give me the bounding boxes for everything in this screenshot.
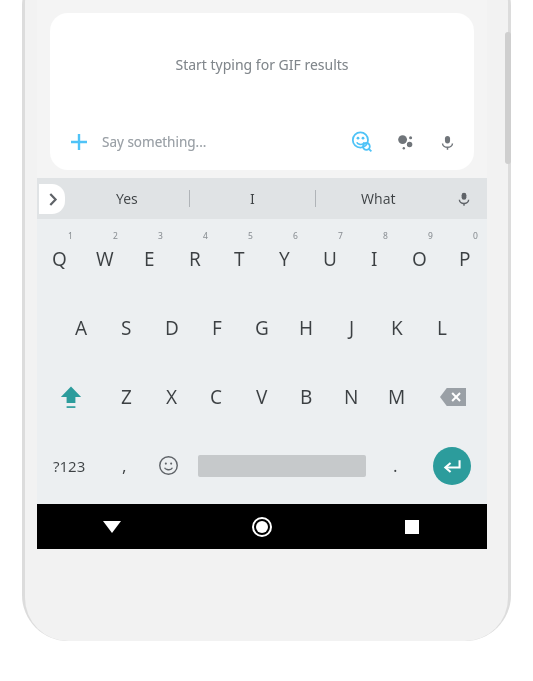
button[interactable]: X (149, 362, 194, 431)
button[interactable]: P (442, 225, 487, 293)
staticText: B (300, 384, 313, 410)
button[interactable]: O (397, 225, 442, 293)
staticText: A (75, 315, 88, 341)
button[interactable]: M (374, 362, 419, 431)
button[interactable]: Space (190, 431, 373, 500)
button[interactable]: H (284, 293, 329, 362)
button[interactable]: Q (37, 225, 82, 293)
button[interactable]: Enter (417, 431, 487, 500)
button[interactable]: L (419, 293, 464, 362)
staticText: V (256, 384, 268, 410)
staticText: R (189, 246, 201, 272)
button[interactable]: C (194, 362, 239, 431)
button[interactable]: Say something... (102, 133, 346, 151)
button[interactable]: What (316, 178, 441, 219)
button[interactable]: Add attachment (64, 127, 94, 157)
button[interactable]: I (352, 225, 397, 293)
button[interactable]: . (373, 431, 417, 500)
button[interactable]: J (329, 293, 374, 362)
staticText: D (165, 315, 179, 341)
staticText: E (144, 246, 155, 272)
button[interactable]: N (329, 362, 374, 431)
staticText: , (122, 454, 127, 477)
staticText: H (299, 315, 314, 341)
button[interactable]: G (239, 293, 284, 362)
button[interactable]: T (217, 225, 262, 293)
button[interactable]: Home (187, 504, 337, 549)
staticText: 9 (428, 230, 433, 242)
staticText: 3 (158, 230, 163, 242)
button[interactable]: Backspace (419, 362, 487, 431)
button[interactable]: Recents (337, 504, 487, 549)
staticText: M (388, 384, 406, 410)
staticText: T (234, 246, 245, 272)
staticText: J (349, 315, 355, 341)
staticText: . (393, 454, 398, 477)
staticText: 2 (113, 230, 118, 242)
staticText: I (371, 246, 378, 272)
button[interactable]: S (104, 293, 149, 362)
staticText: Q (52, 246, 67, 272)
staticText: 5 (248, 230, 253, 242)
staticText: ?123 (53, 456, 86, 476)
button[interactable]: K (374, 293, 419, 362)
staticText: G (255, 315, 269, 341)
staticText: O (412, 246, 427, 272)
button[interactable]: More suggestions (39, 184, 65, 214)
staticText: 4 (203, 230, 208, 242)
button[interactable]: B (284, 362, 329, 431)
button[interactable]: E (127, 225, 172, 293)
staticText: P (459, 246, 471, 272)
button[interactable]: D (149, 293, 194, 362)
button[interactable]: , (102, 431, 146, 500)
button[interactable]: W (82, 225, 127, 293)
button[interactable]: Z (104, 362, 149, 431)
button[interactable]: Emoji (146, 431, 190, 500)
button[interactable]: Yes (65, 178, 189, 219)
button[interactable]: Voice typing (441, 178, 487, 219)
button[interactable]: R (172, 225, 217, 293)
button[interactable]: A (59, 293, 104, 362)
staticText: I (250, 189, 255, 208)
staticText: S (121, 315, 132, 341)
staticText: K (391, 315, 403, 341)
staticText: X (166, 384, 178, 410)
button[interactable]: I (190, 178, 315, 219)
staticText: N (344, 384, 359, 410)
staticText: 0 (473, 230, 478, 242)
button[interactable]: ?123 (37, 431, 102, 500)
staticText: 8 (383, 230, 388, 242)
staticText: C (210, 384, 223, 410)
staticText: Z (121, 384, 132, 410)
staticText: Start typing for GIF results (175, 55, 349, 74)
staticText: W (96, 246, 114, 272)
button[interactable]: U (307, 225, 352, 293)
button[interactable]: Shift (37, 362, 104, 431)
button[interactable]: Voice input (432, 127, 462, 157)
staticText: F (212, 315, 222, 341)
staticText: 1 (68, 230, 73, 242)
staticText: 6 (293, 230, 298, 242)
staticText: What (361, 189, 396, 208)
button[interactable]: F (194, 293, 239, 362)
staticText: L (437, 315, 447, 341)
button[interactable]: Search emoji (346, 126, 378, 158)
button[interactable]: Assistant (390, 127, 420, 157)
staticText: Y (279, 246, 290, 272)
staticText: 7 (338, 230, 343, 242)
staticText: U (323, 246, 337, 272)
button[interactable]: V (239, 362, 284, 431)
button[interactable]: Y (262, 225, 307, 293)
button[interactable]: Back (37, 504, 187, 549)
staticText: Yes (116, 189, 138, 208)
